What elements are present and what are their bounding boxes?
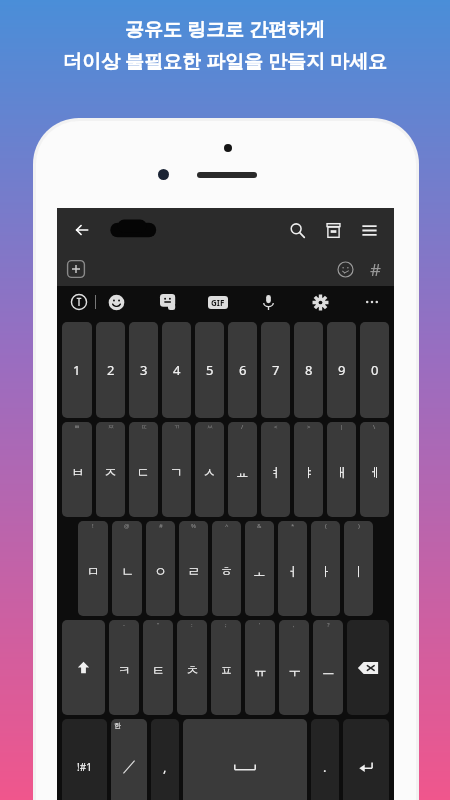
button[interactable]: shift	[62, 620, 105, 715]
staticText: !	[92, 522, 94, 530]
button[interactable]: Voice input	[256, 290, 280, 314]
button[interactable]: 2	[96, 322, 125, 418]
button[interactable]: "	[143, 620, 173, 715]
button[interactable]: Settings	[308, 290, 332, 314]
button[interactable]: 7	[261, 322, 290, 418]
staticText: 3	[140, 361, 148, 379]
button[interactable]: Archive	[318, 215, 348, 245]
staticText: ?	[327, 621, 330, 629]
staticText: ㅔ	[368, 464, 381, 480]
button[interactable]: enter	[343, 719, 389, 800]
button[interactable]: \	[360, 422, 389, 517]
button[interactable]: 한	[111, 719, 147, 800]
staticText: 4	[173, 361, 181, 379]
staticText: ㅅ	[203, 464, 216, 480]
staticText: ㅕ	[269, 464, 282, 480]
button[interactable]: <	[261, 422, 290, 517]
button[interactable]: Emoticon	[334, 258, 356, 280]
button[interactable]: >	[294, 422, 323, 517]
button[interactable]: Chat title	[103, 217, 159, 243]
button[interactable]: -	[109, 620, 139, 715]
button[interactable]: 6	[228, 322, 257, 418]
staticText: 6	[239, 361, 247, 379]
staticText: 더이상 불필요한 파일을 만들지 마세요	[63, 48, 387, 74]
staticText: ㅉ	[108, 423, 114, 431]
staticText: ㅎ	[220, 563, 233, 579]
button[interactable]: ㅃ	[62, 422, 92, 517]
staticText: 1	[73, 361, 81, 379]
button[interactable]: GIF	[208, 296, 228, 309]
staticText: :	[191, 621, 193, 629]
staticText: ㄴ	[121, 563, 134, 579]
button[interactable]: space	[183, 719, 307, 800]
button[interactable]: ‚	[279, 620, 309, 715]
button[interactable]: ;	[211, 620, 241, 715]
button[interactable]: ,	[151, 719, 179, 800]
button[interactable]: (	[311, 521, 340, 616]
button[interactable]: Stickers	[156, 290, 180, 314]
button[interactable]: *	[278, 521, 307, 616]
button[interactable]: ?	[313, 620, 343, 715]
button[interactable]: 3	[129, 322, 158, 418]
button[interactable]: ㅉ	[96, 422, 125, 517]
button[interactable]: /	[228, 422, 257, 517]
button[interactable]: )	[344, 521, 373, 616]
staticText: ㄱ	[170, 464, 183, 480]
staticText: 7	[272, 361, 280, 379]
button[interactable]: Back	[67, 215, 97, 245]
staticText: ㅠ	[254, 662, 267, 678]
button[interactable]: Hashtag	[364, 258, 386, 280]
button[interactable]: !#1	[62, 719, 107, 800]
staticText: ;	[225, 621, 227, 629]
staticText: 공유도 링크로 간편하게	[125, 16, 325, 42]
staticText: ㅡ	[322, 662, 335, 678]
staticText: !#1	[77, 760, 92, 774]
staticText: ㅃ	[74, 423, 80, 431]
button[interactable]: 4	[162, 322, 191, 418]
button[interactable]: %	[179, 521, 208, 616]
button[interactable]: :	[177, 620, 207, 715]
button[interactable]: ㅆ	[195, 422, 224, 517]
button[interactable]: del	[347, 620, 389, 715]
button[interactable]: Menu	[354, 215, 384, 245]
staticText: GIF	[211, 297, 225, 308]
button[interactable]: More options	[360, 290, 384, 314]
staticText: <	[274, 423, 278, 431]
button[interactable]: '	[245, 620, 275, 715]
staticText: ‚	[293, 621, 295, 629]
button[interactable]: 8	[294, 322, 323, 418]
staticText: /	[241, 423, 244, 431]
button[interactable]: !	[78, 521, 108, 616]
button[interactable]: &	[245, 521, 274, 616]
staticText: ㅊ	[186, 662, 199, 678]
button[interactable]: 9	[327, 322, 356, 418]
staticText: ㅆ	[207, 423, 213, 431]
button[interactable]: 0	[360, 322, 389, 418]
button[interactable]: ㄸ	[129, 422, 158, 517]
button[interactable]: Emoji	[104, 290, 128, 314]
button[interactable]: 5	[195, 322, 224, 418]
staticText: ㅜ	[288, 662, 301, 678]
button[interactable]: 1	[62, 322, 92, 418]
button[interactable]: .	[311, 719, 339, 800]
button[interactable]: Attach	[65, 258, 87, 280]
button[interactable]: ㄲ	[162, 422, 191, 517]
staticText: #	[159, 522, 163, 530]
button[interactable]: #	[146, 521, 175, 616]
staticText: ㅇ	[154, 563, 167, 579]
button[interactable]: Search	[282, 215, 312, 245]
staticText: ^	[225, 522, 229, 530]
staticText: %	[191, 522, 196, 530]
staticText: 9	[338, 361, 346, 379]
staticText: ㅁ	[87, 563, 100, 579]
staticText: .	[323, 758, 327, 776]
staticText: ㅗ	[253, 563, 266, 579]
staticText: ㅋ	[118, 662, 131, 678]
button[interactable]: Translate	[67, 290, 91, 314]
button[interactable]: ^	[212, 521, 241, 616]
button[interactable]: |	[327, 422, 356, 517]
staticText: ㄹ	[187, 563, 200, 579]
staticText: &	[257, 522, 262, 530]
button[interactable]: @	[112, 521, 142, 616]
staticText: \	[373, 423, 376, 431]
